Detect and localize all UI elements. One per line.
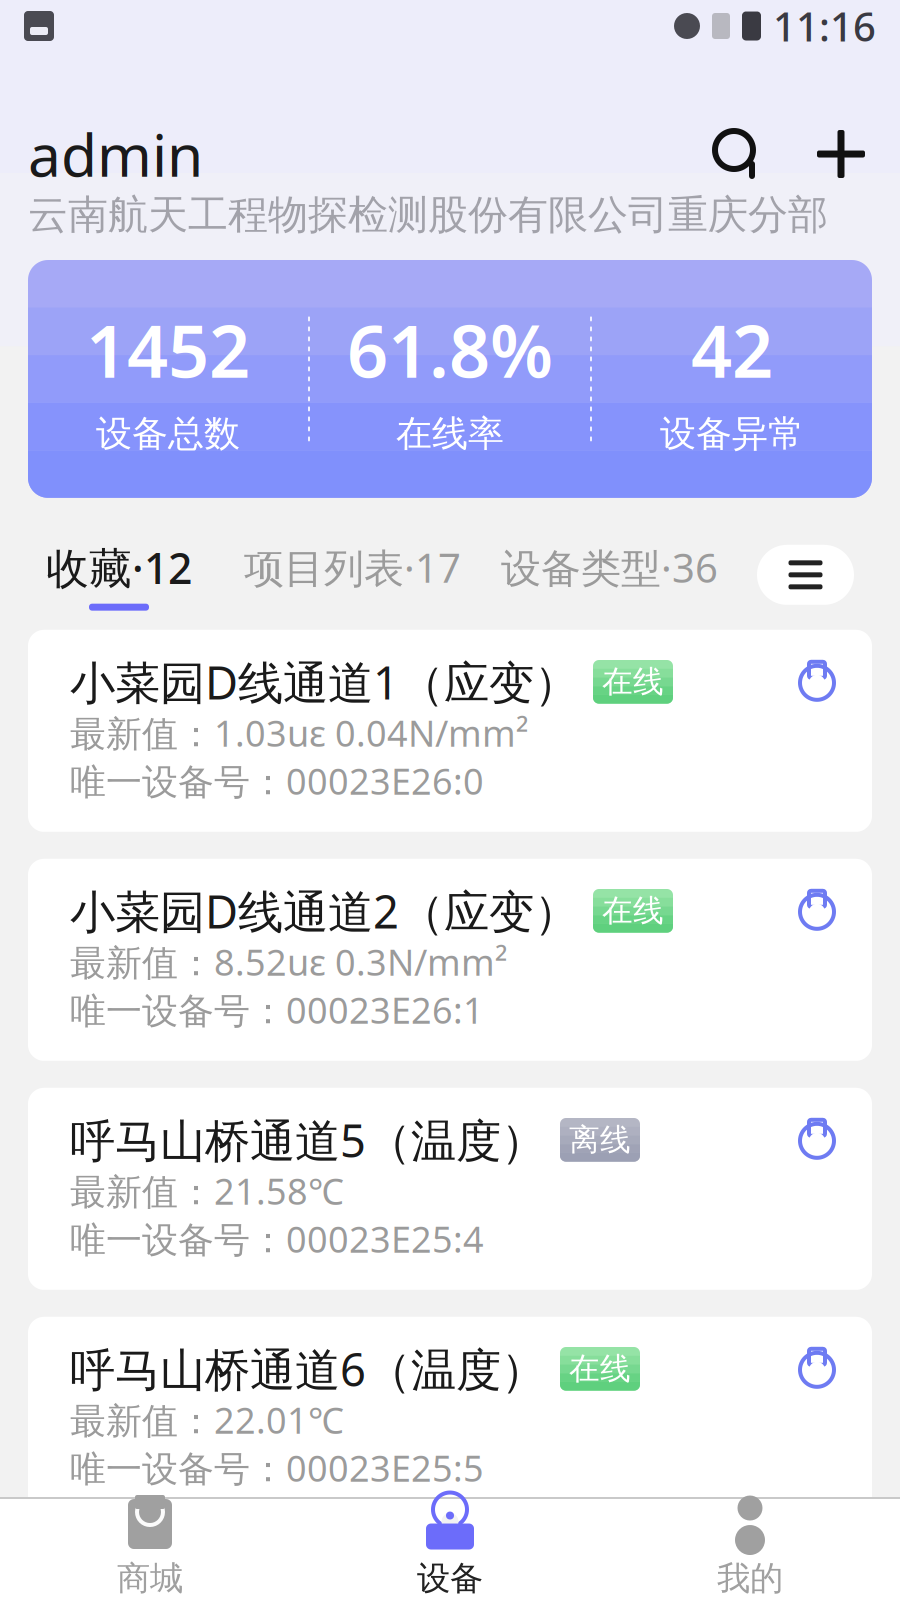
staticText: 唯一设备号：00023E26:0 xyxy=(70,757,484,805)
button[interactable]: 更多筛选 xyxy=(757,545,854,605)
staticText: 唯一设备号：00023E25:5 xyxy=(70,1444,484,1492)
staticText: 1452 xyxy=(86,302,250,398)
staticText: 呼马山桥通道6（温度） xyxy=(70,1339,546,1399)
button[interactable]: 设备 xyxy=(300,1486,600,1600)
staticText: 最新值：21.58℃ xyxy=(70,1167,344,1215)
staticText: 最新值：1.03uε 0.04N/mm² xyxy=(70,709,529,757)
staticText: 呼马山桥通道5（温度） xyxy=(70,1110,546,1170)
staticText: 在线 xyxy=(602,892,664,930)
staticText: 设备 xyxy=(417,1558,483,1599)
button[interactable]: 呼马山桥通道6（温度） xyxy=(28,1317,872,1519)
staticText: 42 xyxy=(691,302,773,398)
button[interactable]: 商城 xyxy=(0,1486,300,1600)
staticText: 云南航天工程物探检测股份有限公司重庆分部 xyxy=(28,190,828,239)
button[interactable]: 收藏·12 xyxy=(46,539,192,611)
staticText: 我的 xyxy=(717,1558,783,1599)
staticText: 设备类型·36 xyxy=(501,541,718,594)
button[interactable]: 小菜园D线通道2（应变） xyxy=(28,859,872,1061)
staticText: 小菜园D线通道2（应变） xyxy=(70,881,579,941)
staticText: 11:16 xyxy=(773,0,876,52)
staticText: 收藏·12 xyxy=(46,539,192,596)
button[interactable]: 小菜园D线通道1（应变） xyxy=(28,630,872,832)
staticText: 小菜园D线通道1（应变） xyxy=(70,652,579,712)
button[interactable]: 搜索 xyxy=(706,123,768,185)
staticText: 在线 xyxy=(602,663,664,701)
staticText: 项目列表·17 xyxy=(244,541,461,594)
staticText: 在线 xyxy=(569,1350,631,1388)
staticText: 唯一设备号：00023E26:1 xyxy=(70,986,484,1034)
staticText: admin xyxy=(28,115,203,193)
staticText: 离线 xyxy=(569,1121,631,1159)
staticText: 最新值：22.01℃ xyxy=(70,1396,344,1444)
staticText: 在线率 xyxy=(396,412,504,456)
staticText: 商城 xyxy=(117,1558,183,1599)
button[interactable]: 呼马山桥通道5（温度） xyxy=(28,1088,872,1290)
staticText: 61.8% xyxy=(347,302,553,398)
button[interactable]: 项目列表·17 xyxy=(244,541,461,609)
button[interactable]: 设备类型·36 xyxy=(501,541,718,609)
button[interactable]: 我的 xyxy=(600,1486,900,1600)
staticText: 唯一设备号：00023E25:4 xyxy=(70,1215,484,1263)
staticText: 设备异常 xyxy=(660,412,804,456)
staticText: 最新值：8.52uε 0.3N/mm² xyxy=(70,938,508,986)
staticText: 设备总数 xyxy=(96,412,240,456)
button[interactable]: 添加 xyxy=(810,123,872,185)
